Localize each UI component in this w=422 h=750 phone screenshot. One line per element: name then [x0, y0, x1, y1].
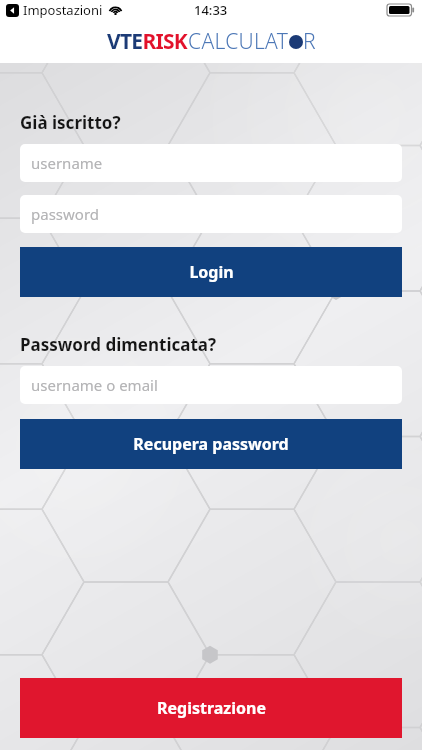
staticText: Login	[189, 261, 234, 283]
staticText: 14:33	[194, 1, 228, 19]
button[interactable]: password	[20, 195, 402, 233]
staticText: username	[31, 153, 103, 173]
staticText: password	[31, 204, 99, 224]
button[interactable]: username o email	[20, 366, 402, 404]
staticText: Recupera password	[133, 433, 289, 455]
staticText: Password dimenticata?	[20, 333, 422, 356]
button[interactable]: Registrazione	[20, 678, 402, 738]
staticText: Registrazione	[157, 697, 266, 719]
staticText: username o email	[31, 375, 158, 395]
button[interactable]: Login	[20, 247, 402, 297]
button[interactable]: username	[20, 144, 402, 182]
staticText: Impostazioni	[23, 1, 103, 19]
staticText: R	[303, 27, 316, 56]
staticText: VTERISK	[107, 27, 188, 56]
button[interactable]: Recupera password	[20, 419, 402, 469]
button[interactable]: Back to Impostazioni	[6, 1, 122, 19]
staticText: CALCULAT	[188, 27, 289, 56]
staticText: Già iscritto?	[20, 111, 422, 134]
